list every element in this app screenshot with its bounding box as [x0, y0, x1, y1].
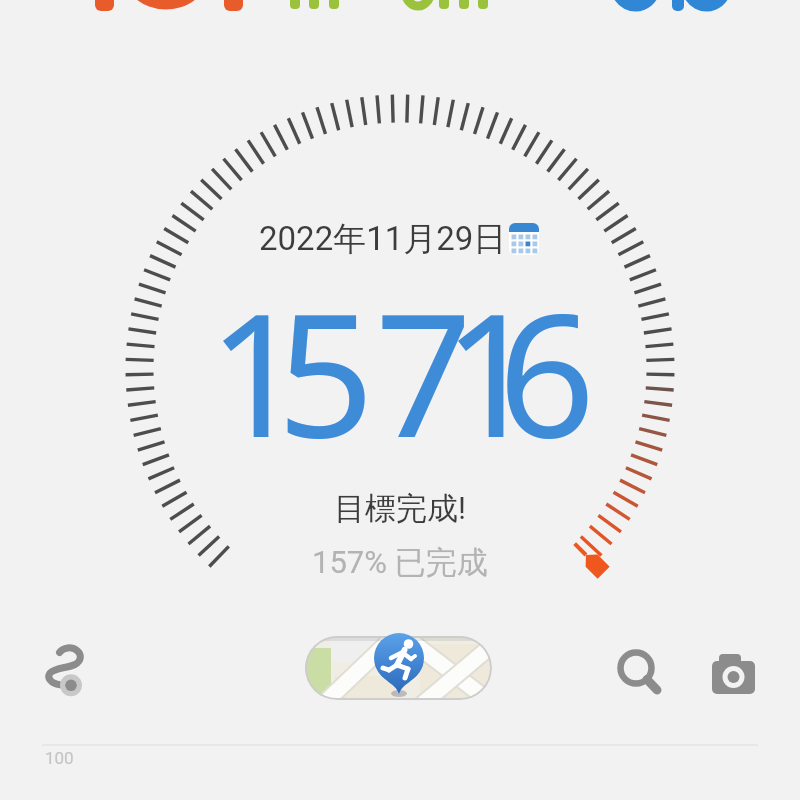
button[interactable]	[38, 637, 92, 691]
staticText: 7	[375, 255, 473, 487]
button[interactable]	[612, 645, 662, 695]
staticText: 6	[498, 255, 596, 487]
button[interactable]	[305, 636, 492, 700]
staticText: 100	[45, 748, 74, 768]
staticText: 5	[277, 255, 375, 487]
staticText: 1	[443, 255, 541, 487]
button[interactable]: 2022年11月29日	[259, 218, 549, 260]
button[interactable]	[706, 648, 758, 700]
staticText: 1	[208, 255, 306, 487]
staticText: 2022年11月29日	[259, 218, 507, 260]
staticText: 157% 已完成	[312, 543, 488, 582]
staticText: 目標完成!	[334, 489, 466, 528]
